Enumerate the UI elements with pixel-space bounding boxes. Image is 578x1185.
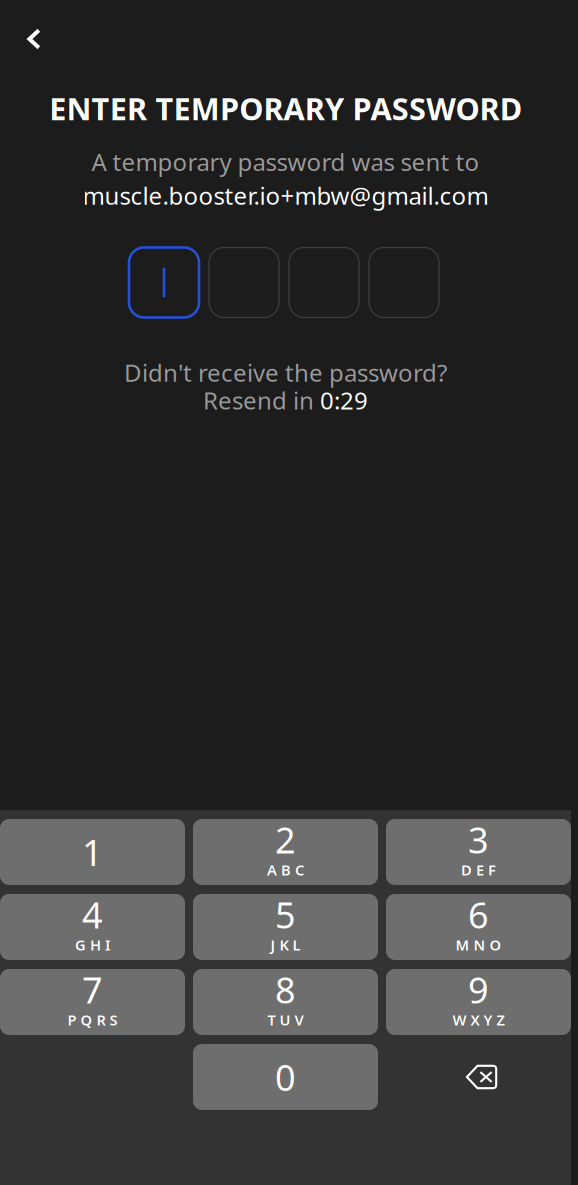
staticText: 6 [468,891,489,938]
staticText: muscle.booster.io+mbw@gmail.com [82,180,488,211]
staticText: 3 [468,816,489,863]
button[interactable]: Password digit [209,247,279,317]
staticText: 4 [82,891,103,938]
staticText: M N O [455,935,501,954]
staticText: 8 [275,966,296,1013]
button[interactable]: Password digit [369,247,439,317]
staticText: Didn't receive the password? [124,356,447,388]
staticText: J K L [270,935,300,954]
button[interactable]: 7 [0,969,185,1035]
staticText: T U V [267,1010,303,1029]
staticText: W X Y Z [452,1010,504,1029]
button[interactable]: Password digit [129,247,199,317]
staticText: A B C [267,860,304,879]
staticText: ENTER TEMPORARY PASSWORD [49,88,522,129]
button[interactable]: Password digit [289,247,359,317]
staticText: 0:29 [320,384,368,416]
button[interactable]: 5 [193,894,378,960]
button[interactable]: Delete [386,1044,571,1110]
staticText: 0 [275,1053,296,1101]
staticText: D E F [461,860,496,879]
button[interactable]: 1 [0,819,185,885]
button[interactable]: 3 [386,819,571,885]
staticText: 7 [82,966,103,1013]
staticText: G H I [75,935,110,954]
button[interactable]: 0 [193,1044,378,1110]
staticText: Resend in [203,384,314,416]
staticText: 2 [275,816,296,863]
staticText: P Q R S [67,1010,117,1029]
staticText: 9 [468,966,489,1013]
staticText: A temporary password was sent to [91,146,479,178]
button[interactable]: 4 [0,894,185,960]
button[interactable]: 6 [386,894,571,960]
button[interactable]: 2 [193,819,378,885]
staticText: 1 [82,828,103,876]
button[interactable]: 8 [193,969,378,1035]
button[interactable]: Back [0,0,65,62]
staticText: 5 [275,891,296,938]
button[interactable]: 9 [386,969,571,1035]
